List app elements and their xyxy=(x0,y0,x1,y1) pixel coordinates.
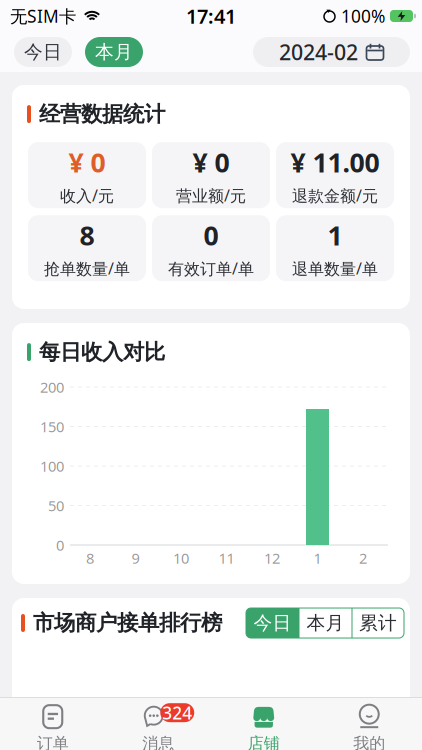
staticText: 8 xyxy=(79,217,94,253)
button[interactable]: 2024-02 xyxy=(253,37,410,67)
staticText: 消息 xyxy=(142,734,174,750)
staticText: 退单数量/单 xyxy=(292,258,378,279)
staticText: 无SIM卡 xyxy=(10,4,76,27)
staticText: 2024-02 xyxy=(279,38,358,66)
button[interactable]: 今日 xyxy=(14,37,72,67)
staticText: 店铺 xyxy=(248,734,280,750)
staticText: 0 xyxy=(56,535,64,555)
staticText: 有效订单/单 xyxy=(168,258,254,279)
staticText: 10 xyxy=(173,548,189,568)
staticText: 经营数据统计 xyxy=(39,101,165,127)
staticText: 订单 xyxy=(37,734,69,750)
staticText: 100% xyxy=(341,4,385,27)
button[interactable]: 累计 xyxy=(352,608,404,638)
staticText: 11 xyxy=(218,548,234,568)
staticText: ¥ 11.00 xyxy=(290,144,379,180)
staticText: 累计 xyxy=(359,611,397,634)
staticText: 17:41 xyxy=(186,3,236,29)
staticText: 市场商户接单排行榜 xyxy=(33,610,222,636)
staticText: 100 xyxy=(40,456,64,476)
staticText: 收入/元 xyxy=(60,185,114,206)
button[interactable]: 本月 xyxy=(85,37,143,67)
staticText: 今日 xyxy=(24,40,62,63)
staticText: 8 xyxy=(86,548,94,568)
staticText: 抢单数量/单 xyxy=(44,258,130,279)
staticText: 今日 xyxy=(253,611,291,634)
staticText: 我的 xyxy=(353,734,385,750)
staticText: 每日收入对比 xyxy=(39,339,165,365)
staticText: 150 xyxy=(40,417,64,436)
staticText: 本月 xyxy=(306,611,344,634)
staticText: 本月 xyxy=(95,40,133,63)
staticText: 50 xyxy=(48,496,64,515)
button[interactable]: 店铺 xyxy=(211,697,316,750)
staticText: ¥ 0 xyxy=(192,144,229,180)
staticText: 2 xyxy=(359,548,367,568)
staticText: 9 xyxy=(131,548,139,568)
button[interactable]: 今日 xyxy=(246,608,299,638)
button[interactable]: 324 xyxy=(105,697,211,750)
button[interactable]: 订单 xyxy=(0,697,105,750)
button[interactable]: 本月 xyxy=(299,608,352,638)
staticText: 324 xyxy=(162,701,192,724)
staticText: 退款金额/元 xyxy=(292,185,378,206)
staticText: 0 xyxy=(203,217,218,253)
staticText: ¥ 0 xyxy=(68,144,105,180)
staticText: 200 xyxy=(40,377,64,397)
staticText: 1 xyxy=(313,548,321,568)
button[interactable]: 我的 xyxy=(316,697,422,750)
staticText: 1 xyxy=(327,217,342,253)
staticText: 营业额/元 xyxy=(176,185,246,206)
staticText: 12 xyxy=(264,548,280,568)
